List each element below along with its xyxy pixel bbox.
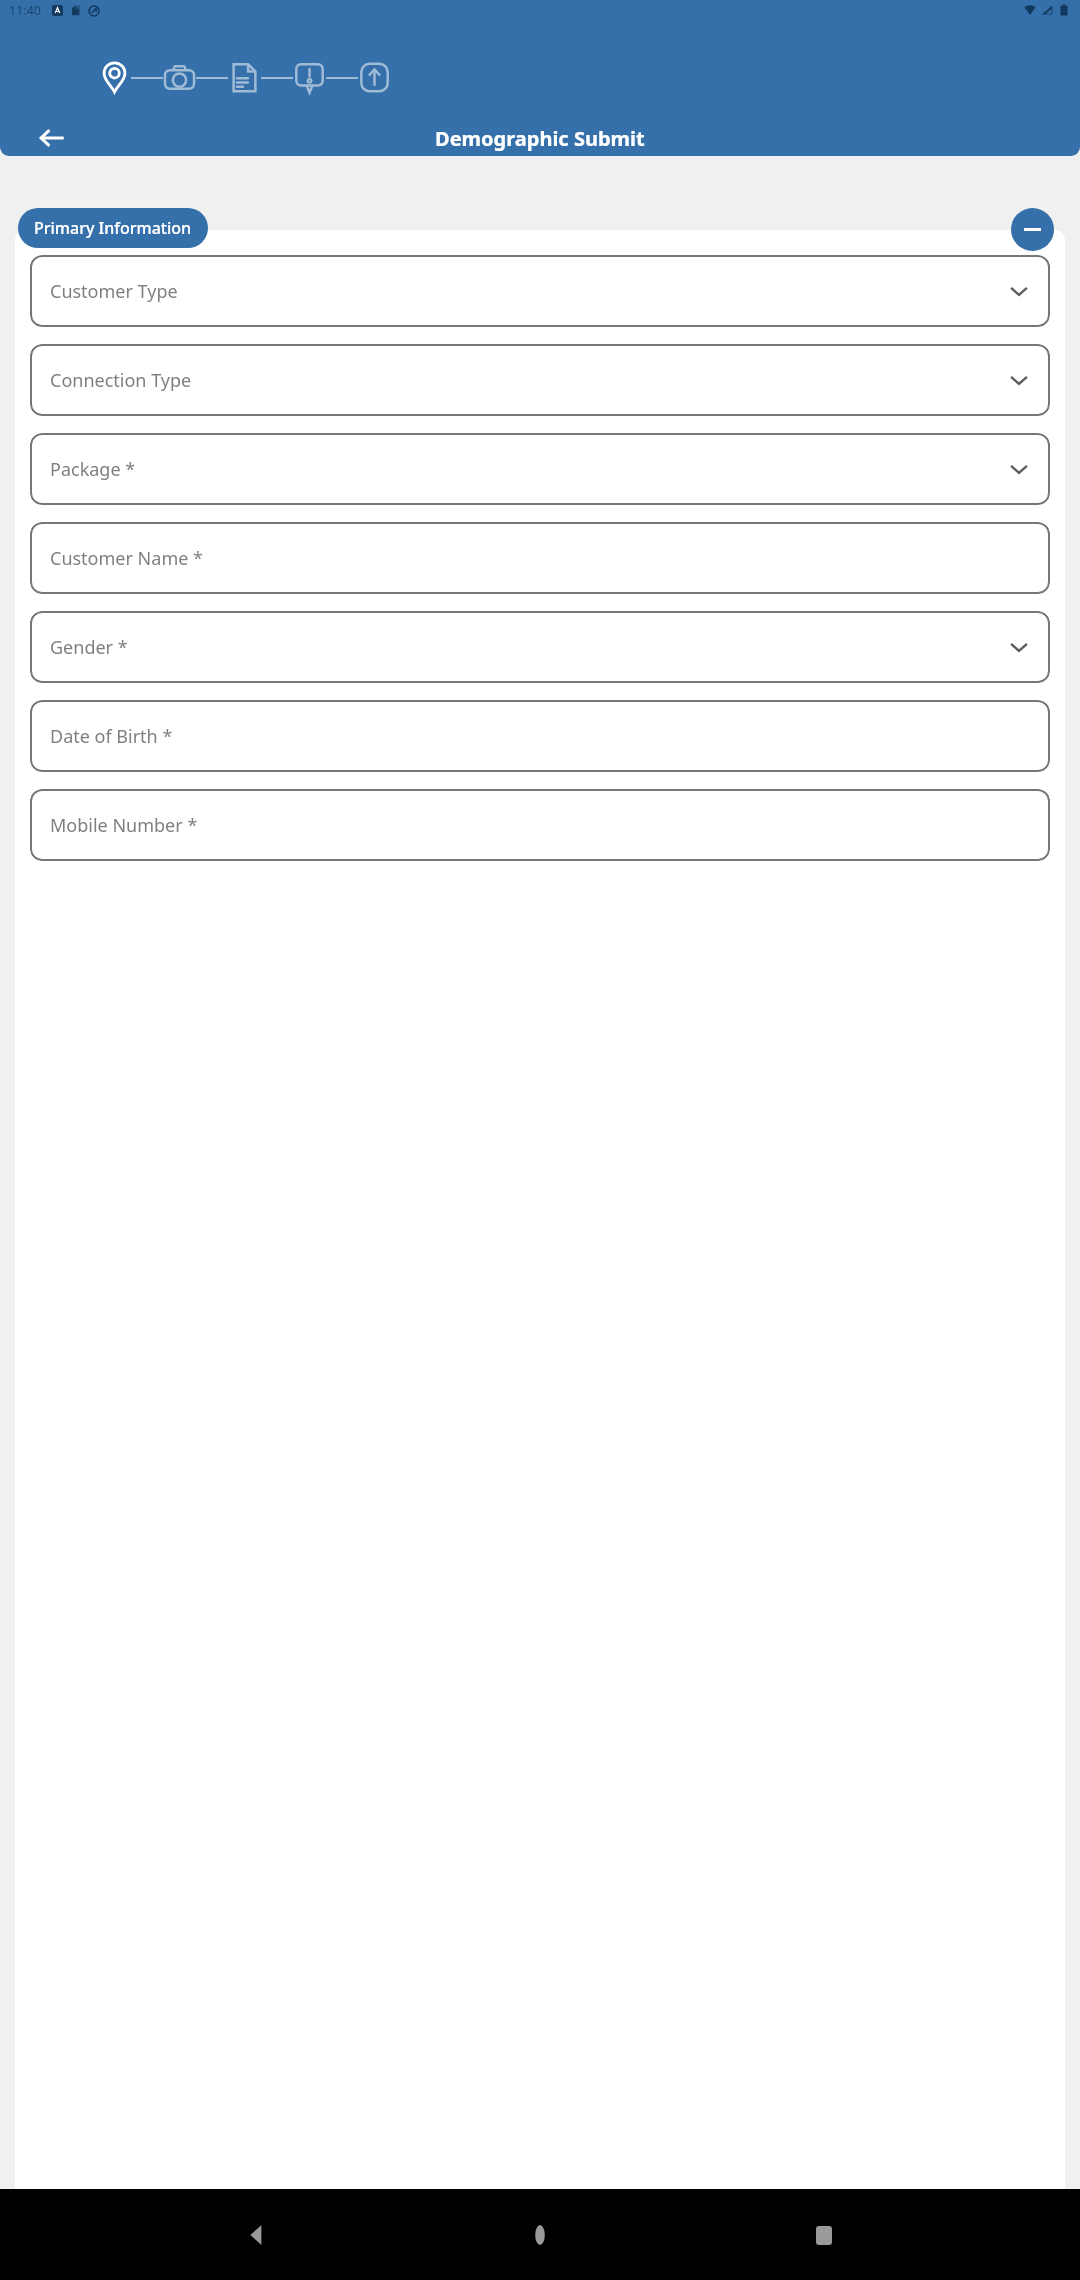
button[interactable]: Mobile Number * <box>30 789 1050 861</box>
staticText: Connection Type <box>50 368 192 393</box>
button[interactable]: Recent apps <box>797 2208 851 2262</box>
button[interactable]: Back <box>230 2208 284 2262</box>
button[interactable]: Customer Name * <box>30 522 1050 594</box>
staticText: 11:40 <box>9 2 41 19</box>
staticText: Gender * <box>50 635 128 660</box>
staticText: Customer Type <box>50 279 178 304</box>
button[interactable]: Connection Type <box>30 344 1050 416</box>
staticText: Customer Name * <box>50 546 203 571</box>
staticText: Date of Birth * <box>50 724 173 749</box>
button[interactable]: Customer Type <box>30 255 1050 327</box>
button[interactable]: Package * <box>30 433 1050 505</box>
button[interactable]: Back <box>30 120 74 156</box>
staticText: Demographic Submit <box>435 125 645 152</box>
button[interactable]: Primary Information <box>18 208 208 248</box>
button[interactable]: Collapse section <box>1011 208 1054 251</box>
button[interactable]: Gender * <box>30 611 1050 683</box>
button[interactable]: Home <box>513 2208 567 2262</box>
staticText: Mobile Number * <box>50 813 198 838</box>
staticText: Package * <box>50 457 136 482</box>
staticText: Primary Information <box>34 217 192 239</box>
button[interactable]: Date of Birth * <box>30 700 1050 772</box>
